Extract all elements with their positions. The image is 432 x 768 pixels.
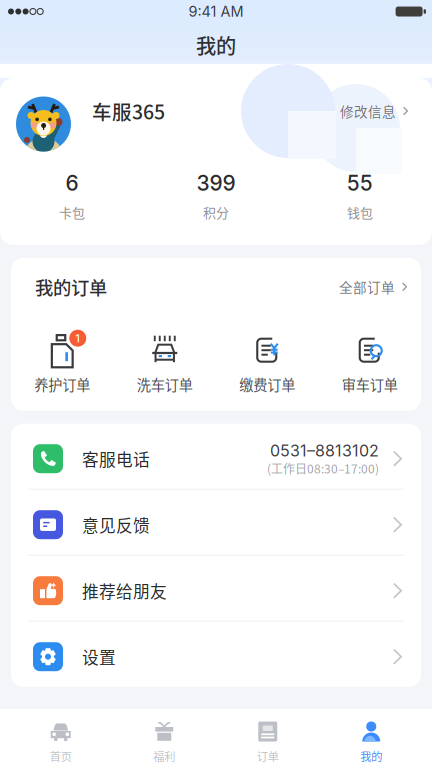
staticText: 积分 <box>203 203 229 221</box>
staticText: 我的 <box>360 748 382 764</box>
staticText: 首页 <box>50 748 72 764</box>
button[interactable]: 1 <box>11 334 113 392</box>
staticText: 设置 <box>82 645 116 669</box>
button[interactable]: 意见反馈 <box>11 490 421 556</box>
staticText: 洗车订单 <box>137 374 193 394</box>
staticText: 1 <box>75 331 80 345</box>
staticText: 推荐给朋友 <box>82 579 167 603</box>
staticText: 缴费订单 <box>239 374 295 394</box>
staticText: 订单 <box>257 748 279 764</box>
staticText: 399 <box>196 170 235 196</box>
button[interactable]: 缴费订单 <box>216 334 318 392</box>
button[interactable]: 修改信息 <box>340 93 408 129</box>
staticText: 我的订单 <box>35 274 107 300</box>
staticText: 我的 <box>196 30 236 60</box>
staticText: 9:41 AM <box>188 3 243 20</box>
staticText: 钱包 <box>347 203 373 221</box>
staticText: 0531–8813102 <box>270 441 379 460</box>
button[interactable]: 推荐给朋友 <box>11 556 421 622</box>
button[interactable]: 审车订单 <box>318 334 421 392</box>
staticText: 客服电话 <box>82 447 150 471</box>
staticText: (工作日08:30–17:00) <box>267 459 379 477</box>
button[interactable]: 福利 <box>112 708 216 768</box>
staticText: 车服365 <box>92 97 165 125</box>
staticText: 意见反馈 <box>82 513 150 537</box>
staticText: 养护订单 <box>34 374 90 394</box>
staticText: 55 <box>347 170 373 196</box>
button[interactable]: 全部订单 <box>339 269 407 305</box>
staticText: 修改信息 <box>340 101 396 121</box>
button[interactable]: 客服电话 <box>11 424 421 490</box>
staticText: 审车订单 <box>342 374 398 394</box>
button[interactable]: 洗车订单 <box>113 334 216 392</box>
button[interactable]: 订单 <box>216 708 319 768</box>
staticText: 全部订单 <box>339 277 395 297</box>
button[interactable]: 设置 <box>11 622 421 687</box>
button[interactable]: 我的 <box>319 708 423 768</box>
staticText: 福利 <box>153 748 175 764</box>
staticText: 卡包 <box>59 203 85 221</box>
staticText: 6 <box>65 170 78 196</box>
button[interactable]: 首页 <box>9 708 112 768</box>
